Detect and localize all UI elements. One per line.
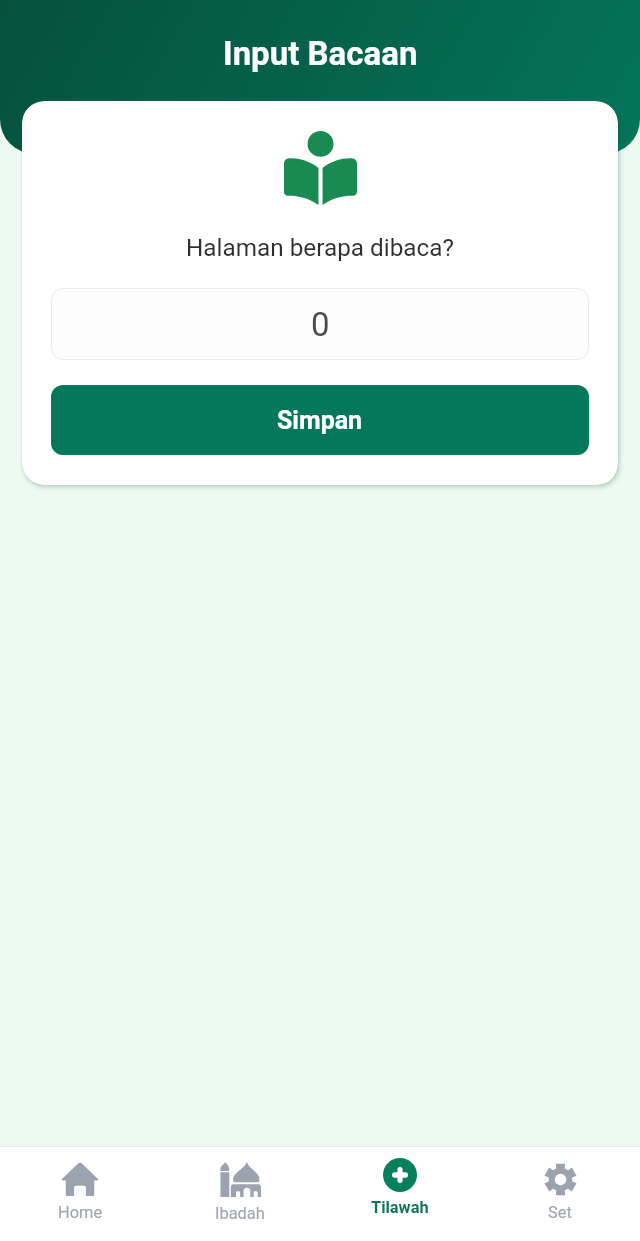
staticText: Home (58, 1203, 103, 1222)
button[interactable]: Home (0, 1147, 160, 1241)
staticText: Ibadah (215, 1204, 265, 1223)
button[interactable]: Ibadah (160, 1147, 320, 1241)
button[interactable]: Tilawah (320, 1147, 480, 1241)
staticText: Set (548, 1203, 572, 1222)
button[interactable]: Simpan (51, 385, 589, 455)
staticText: Halaman berapa dibaca? (186, 233, 454, 261)
button[interactable]: 0 (51, 288, 589, 360)
button[interactable]: Set (480, 1147, 640, 1241)
staticText: 0 (311, 305, 330, 344)
staticText: Simpan (277, 406, 363, 435)
staticText: Input Bacaan (223, 34, 418, 73)
staticText: Tilawah (371, 1198, 429, 1217)
